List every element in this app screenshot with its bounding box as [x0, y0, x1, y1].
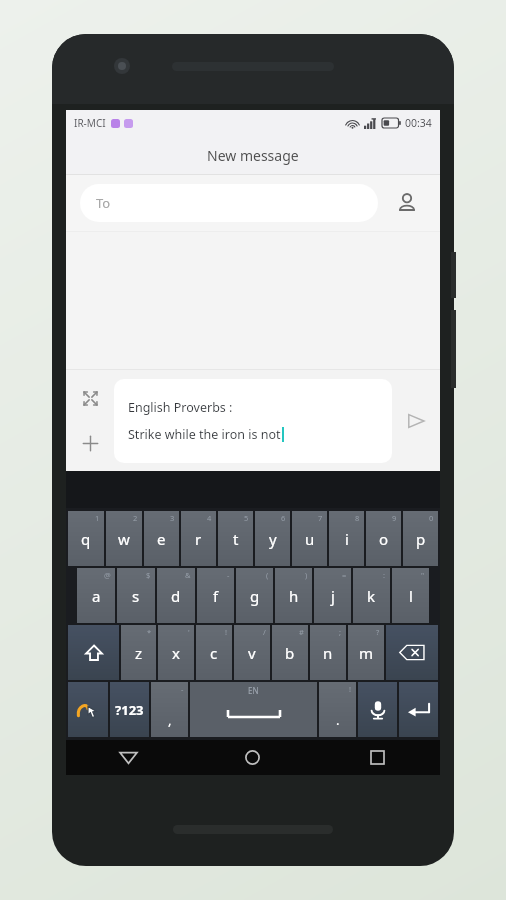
- button[interactable]: Home: [190, 740, 315, 775]
- button[interactable]: Back: [66, 740, 190, 775]
- staticText: 00:34: [405, 116, 432, 130]
- button[interactable]: !: [196, 625, 232, 680]
- button[interactable]: Pick contact: [388, 184, 426, 222]
- button[interactable]: 5: [218, 511, 253, 566]
- staticText: u: [305, 529, 315, 549]
- button[interactable]: &: [157, 568, 195, 623]
- button[interactable]: Space: [190, 682, 317, 737]
- staticText: b: [285, 643, 295, 663]
- button[interactable]: !: [319, 682, 356, 737]
- staticText: t: [233, 529, 239, 549]
- staticText: i: [345, 529, 349, 549]
- button[interactable]: #: [272, 625, 308, 680]
- staticText: a: [92, 586, 101, 606]
- staticText: 3: [170, 513, 175, 523]
- staticText: /: [263, 627, 266, 637]
- button[interactable]: Expand: [73, 381, 107, 415]
- button[interactable]: -: [197, 568, 234, 623]
- staticText: !: [349, 684, 352, 694]
- staticText: ': [188, 627, 190, 637]
- staticText: English Proverbs :: [128, 399, 233, 416]
- staticText: f: [213, 586, 219, 606]
- button[interactable]: 0: [403, 511, 438, 566]
- button[interactable]: $: [117, 568, 155, 623]
- staticText: ;: [339, 627, 342, 637]
- staticText: Strike while the iron is not: [128, 426, 281, 443]
- staticText: ,: [168, 711, 172, 729]
- staticText: =: [342, 570, 347, 580]
- button[interactable]: ?: [348, 625, 384, 680]
- button[interactable]: ": [392, 568, 429, 623]
- button[interactable]: ): [275, 568, 312, 623]
- staticText: EN: [248, 685, 259, 696]
- staticText: 7: [318, 513, 323, 523]
- button[interactable]: -: [151, 682, 188, 737]
- staticText: 9: [392, 513, 397, 523]
- staticText: n: [323, 643, 333, 663]
- staticText: 0: [429, 513, 434, 523]
- button[interactable]: 6: [255, 511, 290, 566]
- button[interactable]: English Proverbs :: [114, 379, 392, 463]
- button[interactable]: Backspace: [386, 625, 438, 680]
- button[interactable]: Shift: [68, 625, 119, 680]
- staticText: -: [227, 570, 230, 580]
- staticText: To: [96, 194, 111, 212]
- staticText: #: [299, 627, 304, 637]
- staticText: ?123: [115, 701, 144, 719]
- button[interactable]: 9: [366, 511, 401, 566]
- button[interactable]: (: [236, 568, 273, 623]
- staticText: :: [383, 570, 386, 580]
- staticText: (: [266, 570, 269, 580]
- staticText: w: [118, 529, 130, 549]
- staticText: r: [195, 529, 202, 549]
- staticText: 2: [133, 513, 138, 523]
- button[interactable]: 7: [292, 511, 327, 566]
- staticText: l: [409, 586, 413, 606]
- button[interactable]: Enter: [399, 682, 438, 737]
- button[interactable]: Voice input: [358, 682, 397, 737]
- staticText: &: [185, 570, 191, 580]
- button[interactable]: Symbols: [110, 682, 149, 737]
- button[interactable]: Send: [392, 370, 440, 471]
- staticText: .: [336, 711, 340, 729]
- staticText: p: [416, 529, 426, 549]
- staticText: New message: [207, 146, 299, 165]
- button[interactable]: Add attachment: [73, 426, 107, 460]
- button[interactable]: :: [353, 568, 390, 623]
- button[interactable]: ': [158, 625, 194, 680]
- staticText: x: [172, 643, 180, 663]
- button[interactable]: *: [121, 625, 156, 680]
- button[interactable]: Recent apps: [315, 740, 440, 775]
- staticText: m: [359, 643, 374, 663]
- button[interactable]: /: [234, 625, 270, 680]
- staticText: v: [248, 643, 256, 663]
- button[interactable]: 8: [329, 511, 364, 566]
- button[interactable]: ;: [310, 625, 346, 680]
- button[interactable]: @: [77, 568, 115, 623]
- staticText: ": [421, 570, 425, 580]
- staticText: ?: [376, 627, 380, 637]
- button[interactable]: =: [314, 568, 351, 623]
- button[interactable]: 4: [181, 511, 216, 566]
- staticText: c: [210, 643, 218, 663]
- staticText: j: [331, 586, 335, 606]
- button[interactable]: 1: [68, 511, 104, 566]
- staticText: -: [181, 684, 184, 694]
- staticText: k: [367, 586, 376, 606]
- button[interactable]: To: [80, 184, 378, 222]
- staticText: o: [379, 529, 389, 549]
- staticText: IR-MCI: [74, 116, 106, 130]
- staticText: g: [250, 586, 260, 606]
- staticText: ): [305, 570, 308, 580]
- staticText: $: [146, 570, 151, 580]
- staticText: 1: [95, 513, 100, 523]
- button[interactable]: 3: [144, 511, 179, 566]
- staticText: z: [135, 643, 143, 663]
- staticText: h: [289, 586, 299, 606]
- staticText: 5: [244, 513, 249, 523]
- staticText: 8: [355, 513, 360, 523]
- button[interactable]: Swipe input: [68, 682, 108, 737]
- staticText: !: [225, 627, 228, 637]
- button[interactable]: 2: [106, 511, 142, 566]
- staticText: q: [81, 529, 91, 549]
